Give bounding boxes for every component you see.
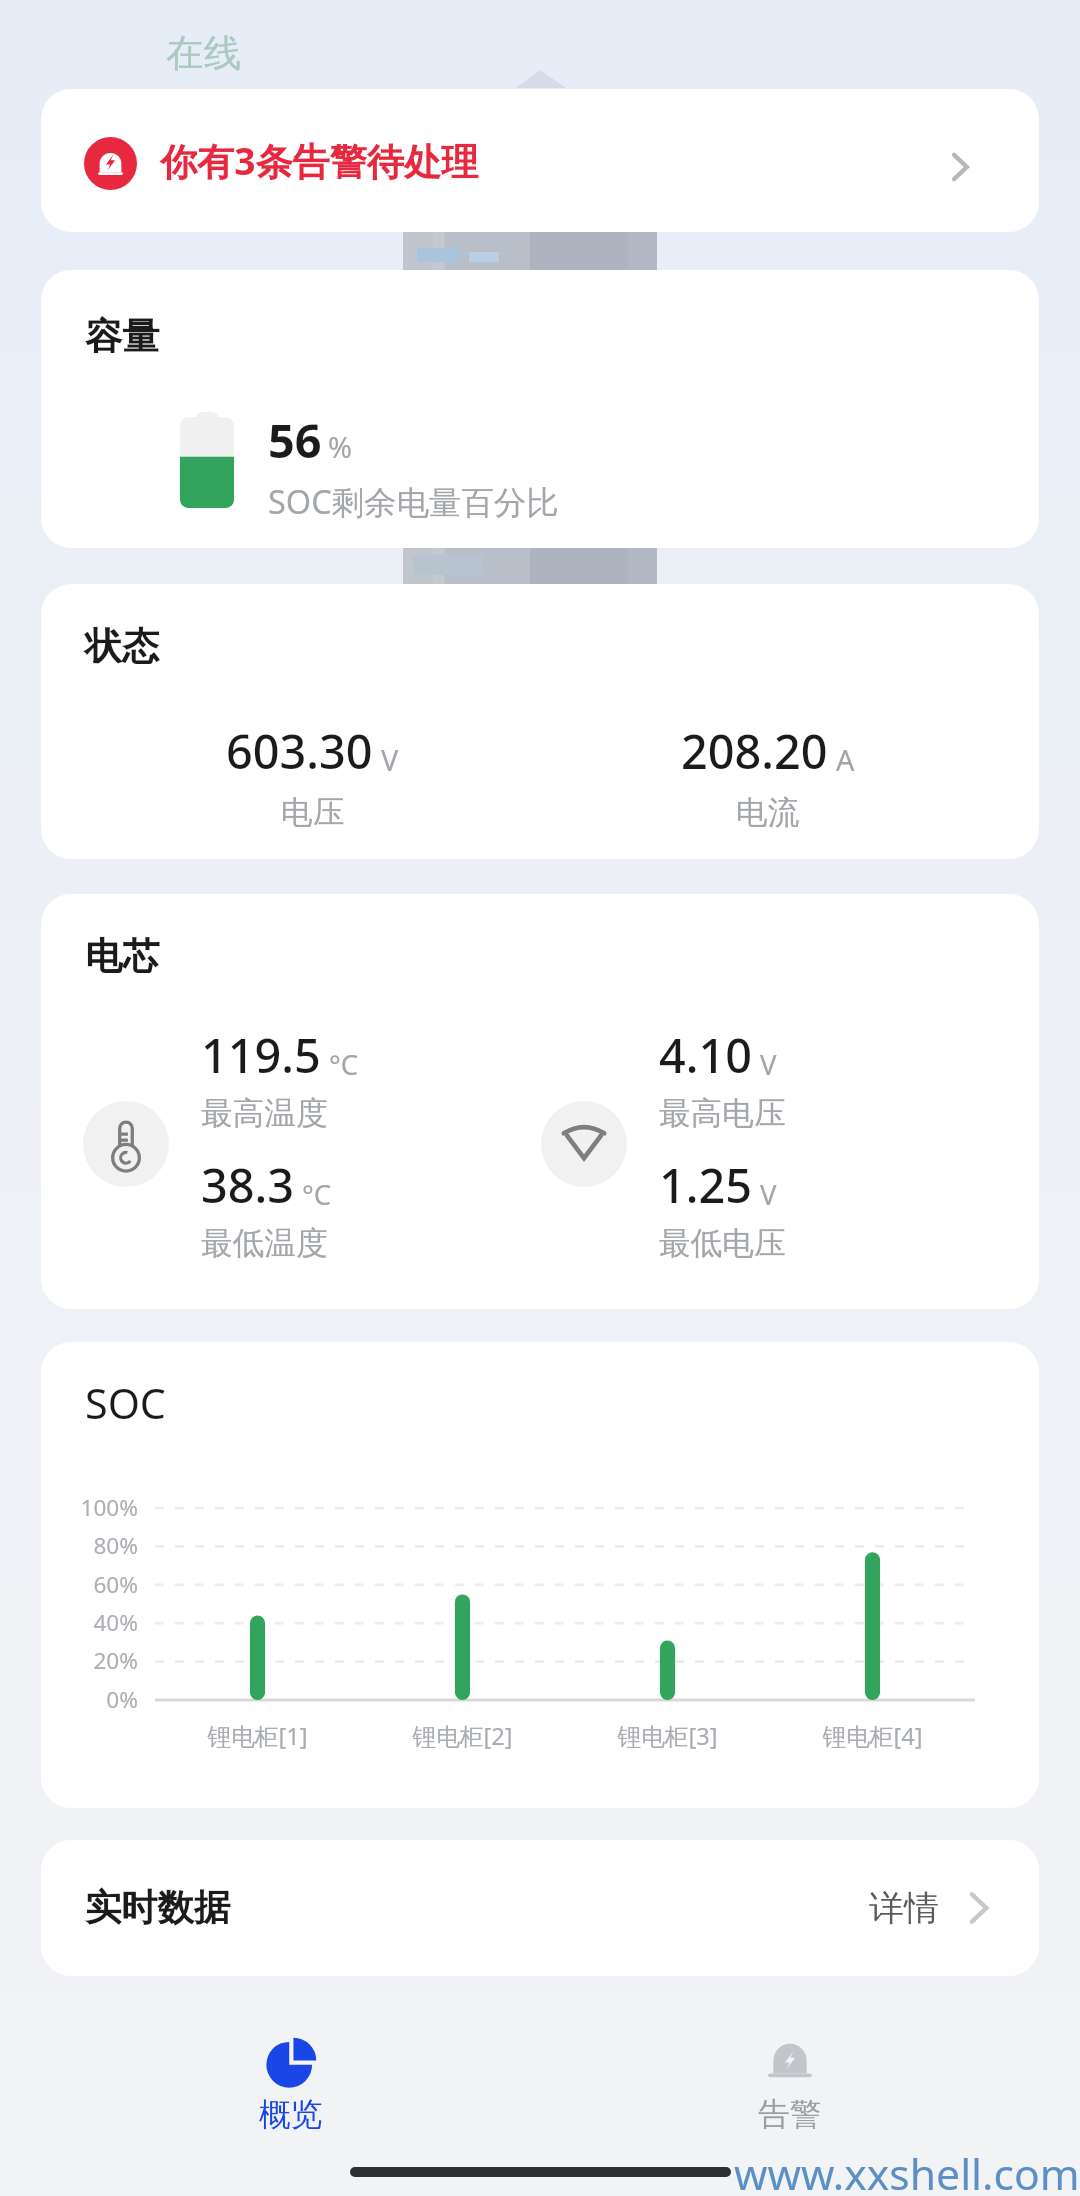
staticText: www.xxshell.com: [734, 2144, 1080, 2196]
staticText: 详情: [869, 1886, 939, 1930]
staticText: SOC: [85, 1375, 166, 1431]
staticText: A: [836, 740, 855, 779]
staticText: 56: [268, 408, 322, 472]
staticText: %: [328, 427, 352, 466]
staticText: 100%: [41, 1492, 138, 1523]
staticText: 最低电压: [659, 1224, 786, 1264]
staticText: 208.20: [681, 719, 828, 783]
staticText: 603.30: [226, 719, 373, 783]
staticText: 80%: [41, 1530, 138, 1561]
staticText: 38.3: [201, 1153, 294, 1217]
staticText: 实时数据: [85, 1885, 231, 1931]
staticText: 你有3条告警待处理: [160, 135, 479, 186]
staticText: 锂电柜[1]: [155, 1720, 360, 1752]
staticText: °C: [302, 1176, 332, 1213]
staticText: 60%: [41, 1569, 138, 1600]
staticText: 概览: [259, 2095, 323, 2135]
other: 告警: [764, 2037, 816, 2089]
staticText: 最高温度: [201, 1094, 328, 1134]
staticText: 最高电压: [659, 1094, 786, 1134]
staticText: V: [760, 1046, 777, 1083]
staticText: 119.5: [201, 1023, 321, 1087]
other: 概览: [265, 2037, 317, 2089]
staticText: 锂电柜[2]: [360, 1720, 565, 1752]
button[interactable]: 你有3条告警待处理: [41, 89, 1039, 232]
staticText: 告警: [758, 2095, 822, 2135]
other: 查看详情: [964, 1890, 1000, 1926]
staticText: 1.25: [659, 1153, 752, 1217]
staticText: 电流: [736, 793, 800, 833]
staticText: °C: [329, 1046, 359, 1083]
staticText: 状态: [85, 623, 160, 670]
staticText: 20%: [41, 1645, 138, 1676]
staticText: SOC剩余电量百分比: [268, 479, 559, 523]
staticText: 最低温度: [201, 1224, 328, 1264]
staticText: 在线: [166, 30, 242, 77]
staticText: 锂电柜[4]: [770, 1720, 975, 1752]
staticText: V: [381, 740, 399, 779]
staticText: 锂电柜[3]: [565, 1720, 770, 1752]
button[interactable]: 概览: [41, 2037, 540, 2135]
staticText: 4.10: [659, 1023, 752, 1087]
staticText: 0%: [41, 1684, 138, 1715]
staticText: V: [760, 1176, 777, 1213]
staticText: 电芯: [85, 933, 160, 980]
button[interactable]: 实时数据: [41, 1840, 1039, 1976]
staticText: 40%: [41, 1607, 138, 1638]
staticText: 电压: [281, 793, 345, 833]
button[interactable]: 告警: [540, 2037, 1039, 2135]
staticText: 容量: [85, 313, 160, 360]
other: 查看告警: [947, 151, 979, 183]
